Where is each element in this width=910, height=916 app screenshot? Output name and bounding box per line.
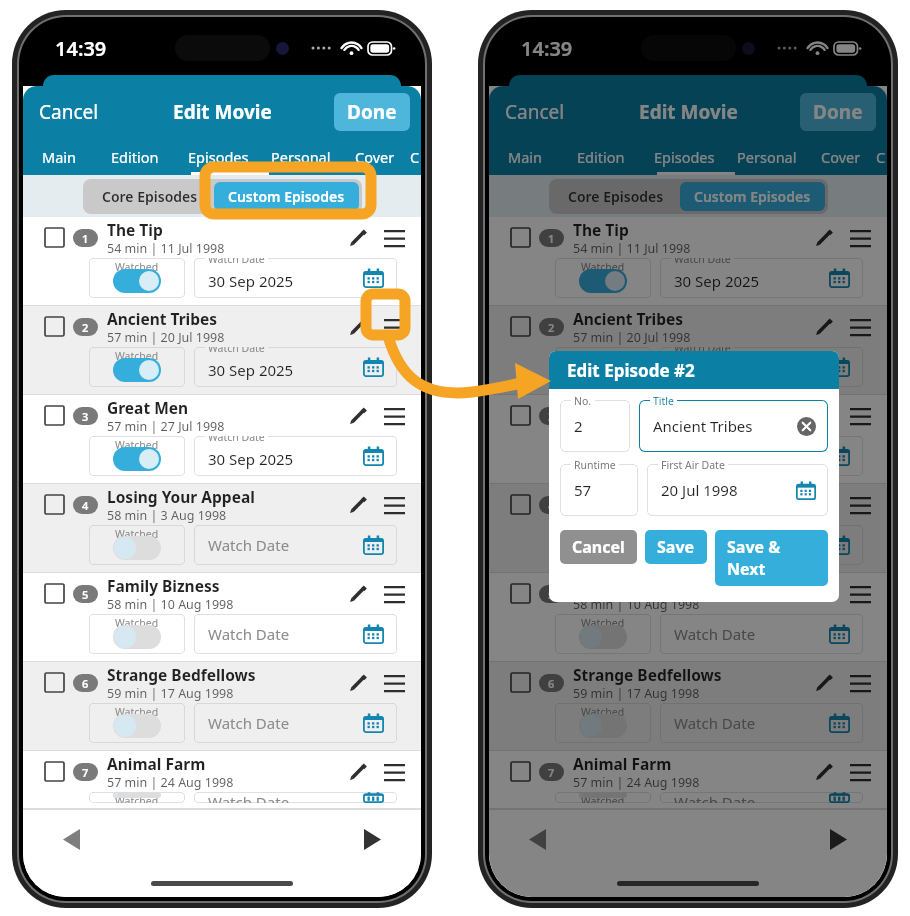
button[interactable]: Watched: [89, 258, 185, 298]
button[interactable]: Done: [334, 93, 410, 131]
button[interactable]: Edit episode 3: [811, 403, 837, 429]
button[interactable]: Core Episodes: [552, 182, 680, 211]
button[interactable]: 7: [23, 751, 421, 809]
button[interactable]: Edit episode 4: [811, 492, 837, 518]
button[interactable]: 2: [23, 306, 421, 395]
button[interactable]: 7: [489, 751, 887, 809]
button[interactable]: Watched: [555, 258, 651, 298]
button[interactable]: Previous: [53, 819, 90, 860]
button[interactable]: Next: [354, 819, 391, 860]
button[interactable]: 57: [560, 464, 638, 516]
button[interactable]: Edit episode 1: [811, 225, 837, 251]
button[interactable]: 5: [23, 573, 421, 662]
button[interactable]: Edit episode 1: [345, 225, 371, 251]
button[interactable]: Reorder episode 2: [846, 315, 875, 338]
button[interactable]: Watch Date: [660, 436, 863, 476]
button[interactable]: 4: [489, 484, 887, 573]
button[interactable]: Watched: [89, 347, 185, 387]
button[interactable]: Reorder episode 7: [846, 760, 875, 783]
button[interactable]: Edit episode 5: [345, 581, 371, 607]
button[interactable]: Cancel: [489, 91, 581, 133]
button[interactable]: Main: [489, 138, 561, 175]
button[interactable]: Done: [800, 93, 876, 131]
button[interactable]: Edit episode 4: [345, 492, 371, 518]
button[interactable]: Reorder episode 4: [846, 493, 875, 516]
button[interactable]: Watch Date: [660, 703, 863, 743]
button[interactable]: 3: [489, 395, 887, 484]
button[interactable]: Edit episode 2: [345, 314, 371, 340]
button[interactable]: Watched: [555, 614, 651, 654]
button[interactable]: Cancel: [560, 530, 637, 564]
button[interactable]: Reorder episode 2: [380, 315, 409, 338]
button[interactable]: Edit episode 5: [811, 581, 837, 607]
button[interactable]: Watched: [89, 703, 185, 743]
button[interactable]: Reorder episode 3: [846, 404, 875, 427]
button[interactable]: Previous: [519, 819, 556, 860]
button[interactable]: Custom Episodes: [680, 182, 825, 211]
button[interactable]: Watched: [89, 525, 185, 565]
button[interactable]: Watch Date: [194, 792, 397, 803]
button[interactable]: Main: [23, 138, 95, 175]
button[interactable]: 5: [489, 573, 887, 662]
button[interactable]: 20 Jul 1998: [647, 464, 828, 516]
button[interactable]: Reorder episode 5: [380, 582, 409, 605]
button[interactable]: Watch Date: [660, 347, 863, 387]
button[interactable]: Watch Date: [660, 525, 863, 565]
button[interactable]: Watched: [89, 792, 185, 803]
button[interactable]: Watch Date: [660, 614, 863, 654]
button[interactable]: Clear title: [797, 417, 816, 436]
button[interactable]: Watch Date: [194, 436, 397, 476]
button[interactable]: Cover: [807, 138, 875, 175]
button[interactable]: Edition: [95, 138, 175, 175]
button[interactable]: 3: [23, 395, 421, 484]
button[interactable]: Next: [820, 819, 857, 860]
button[interactable]: Personal: [727, 138, 807, 175]
button[interactable]: C: [409, 138, 421, 175]
button[interactable]: Edit episode 6: [345, 670, 371, 696]
button[interactable]: 6: [23, 662, 421, 751]
button[interactable]: 2: [489, 306, 887, 395]
button[interactable]: Save: [645, 530, 707, 564]
button[interactable]: Core Episodes: [86, 182, 214, 211]
button[interactable]: Reorder episode 7: [380, 760, 409, 783]
button[interactable]: Reorder episode 6: [846, 671, 875, 694]
button[interactable]: Save & Next: [715, 530, 828, 586]
button[interactable]: Cancel: [23, 91, 115, 133]
button[interactable]: Watch Date: [194, 614, 397, 654]
button[interactable]: Edit episode 3: [345, 403, 371, 429]
button[interactable]: Edit episode 2: [811, 314, 837, 340]
button[interactable]: Watched: [555, 436, 651, 476]
button[interactable]: Ancient Tribes: [639, 400, 828, 452]
button[interactable]: Watch Date: [660, 258, 863, 298]
button[interactable]: Edition: [561, 138, 641, 175]
button[interactable]: Watch Date: [194, 525, 397, 565]
button[interactable]: Edit episode 7: [345, 759, 371, 785]
button[interactable]: Watched: [555, 703, 651, 743]
button[interactable]: Edit episode 6: [811, 670, 837, 696]
button[interactable]: Watch Date: [194, 703, 397, 743]
button[interactable]: Custom Episodes: [214, 182, 359, 211]
button[interactable]: Reorder episode 5: [846, 582, 875, 605]
button[interactable]: Reorder episode 1: [380, 226, 409, 249]
button[interactable]: 6: [489, 662, 887, 751]
button[interactable]: 2: [560, 400, 630, 452]
button[interactable]: Watched: [89, 436, 185, 476]
button[interactable]: Watched: [89, 614, 185, 654]
button[interactable]: Reorder episode 6: [380, 671, 409, 694]
button[interactable]: Watch Date: [660, 792, 863, 803]
button[interactable]: 1: [23, 217, 421, 306]
button[interactable]: Reorder episode 1: [846, 226, 875, 249]
button[interactable]: Edit episode 7: [811, 759, 837, 785]
button[interactable]: Watch Date: [194, 258, 397, 298]
button[interactable]: 1: [489, 217, 887, 306]
button[interactable]: Watched: [555, 347, 651, 387]
button[interactable]: Episodes: [175, 138, 261, 175]
button[interactable]: Watched: [555, 792, 651, 803]
button[interactable]: Watch Date: [194, 347, 397, 387]
button[interactable]: Watched: [555, 525, 651, 565]
button[interactable]: Personal: [261, 138, 341, 175]
button[interactable]: 4: [23, 484, 421, 573]
button[interactable]: Reorder episode 3: [380, 404, 409, 427]
button[interactable]: Reorder episode 4: [380, 493, 409, 516]
button[interactable]: Cover: [341, 138, 409, 175]
